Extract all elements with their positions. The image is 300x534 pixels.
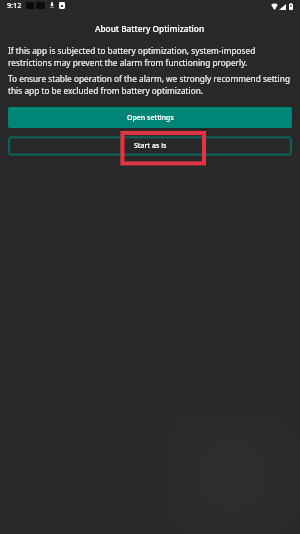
staticText: Start as is — [134, 141, 167, 151]
other: Downloading — [50, 2, 54, 8]
other: Notification — [36, 2, 45, 9]
staticText: If this app is subjected to battery opti… — [8, 45, 292, 68]
staticText: To ensure stable operation of the alarm,… — [8, 73, 292, 96]
other: Notification — [26, 2, 34, 9]
button[interactable]: Open settings — [8, 107, 292, 128]
other: Mobile signal — [279, 4, 286, 10]
button[interactable]: Start as is — [8, 136, 292, 156]
other: Battery — [289, 3, 293, 10]
staticText: 9:12 — [7, 0, 22, 10]
staticText: Open settings — [127, 113, 174, 123]
other: Screen recorder — [59, 2, 65, 9]
other: Wi-Fi — [271, 3, 278, 10]
staticText: About Battery Optimization — [95, 23, 205, 34]
